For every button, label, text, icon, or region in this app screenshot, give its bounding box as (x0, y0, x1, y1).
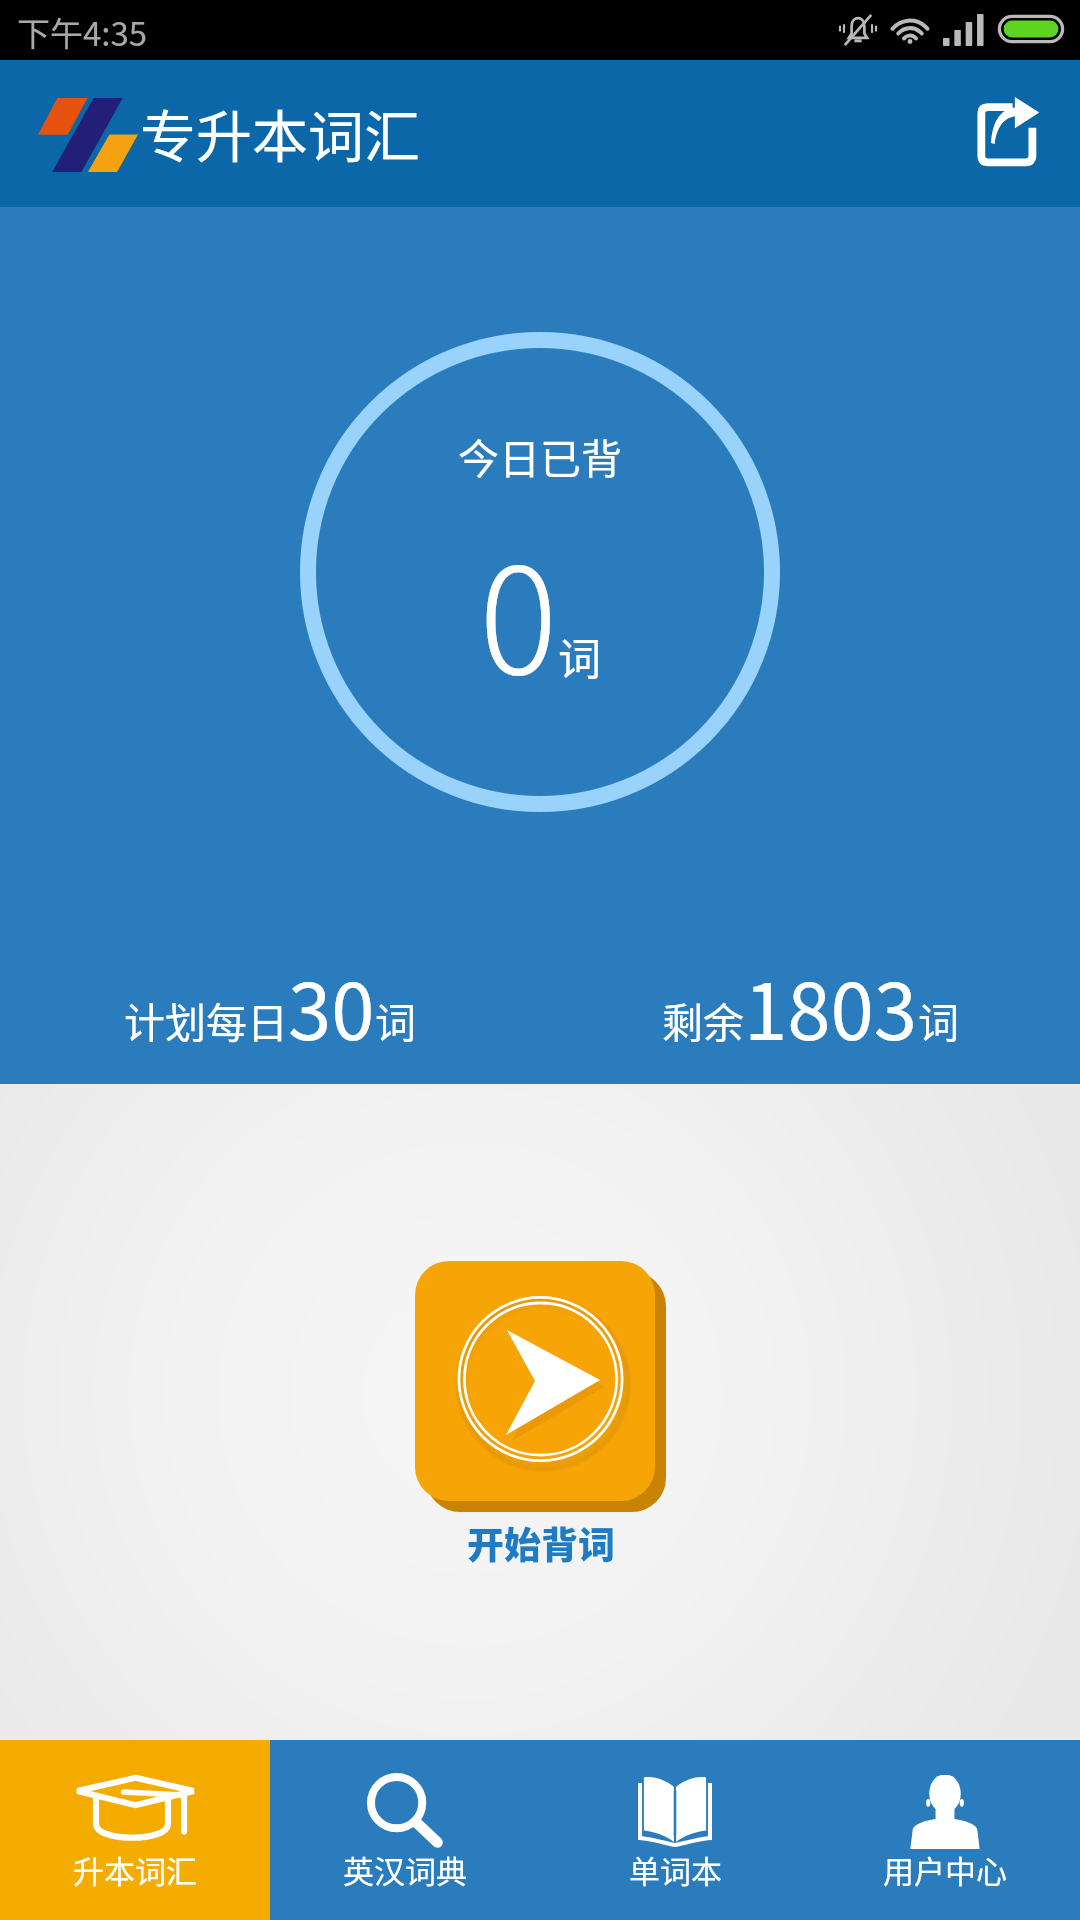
button[interactable]: Share (962, 91, 1054, 183)
button[interactable]: 英汉词典 (270, 1740, 540, 1920)
staticText: 词 (558, 625, 601, 687)
staticText: 专升本词汇 (140, 92, 420, 173)
staticText: 0 (479, 503, 558, 716)
staticText: 1803 (744, 950, 918, 1063)
button[interactable]: 用户中心 (810, 1740, 1080, 1920)
staticText: 用户中心 (883, 1847, 1007, 1892)
staticText: 下午4:35 (17, 8, 148, 56)
button[interactable]: 单词本 (540, 1740, 810, 1920)
button[interactable]: 升本词汇 (0, 1740, 270, 1920)
staticText: 词 (918, 990, 959, 1049)
staticText: 单词本 (629, 1847, 722, 1892)
staticText: 剩余 (662, 990, 744, 1049)
staticText: 英汉词典 (343, 1847, 467, 1892)
staticText: 开始背词 (467, 1516, 615, 1570)
staticText: 计划每日 (124, 990, 288, 1049)
staticText: 升本词汇 (73, 1847, 197, 1892)
staticText: 30 (288, 950, 375, 1063)
staticText: 词 (375, 990, 416, 1049)
staticText: 今日已背 (458, 426, 622, 485)
button[interactable]: 开始背词 (415, 1261, 666, 1570)
